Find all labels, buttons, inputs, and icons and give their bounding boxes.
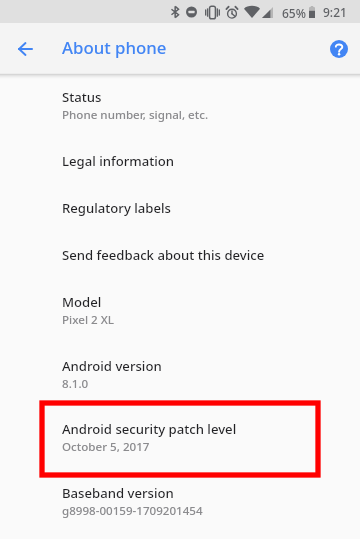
staticText: g8998-00159-1709201454 [62, 503, 203, 519]
staticText: Status [62, 88, 102, 106]
button[interactable]: Android security patch level [0, 408, 360, 464]
button[interactable]: Legal information [0, 140, 360, 182]
staticText: Baseband version [62, 484, 174, 502]
staticText: 9:21 [323, 4, 347, 20]
staticText: About phone [62, 36, 167, 59]
staticText: Model [62, 293, 102, 311]
staticText: Regulatory labels [62, 199, 171, 217]
button[interactable]: Back [12, 36, 38, 62]
button[interactable]: Help [319, 29, 359, 69]
button[interactable]: Send feedback about this device [0, 234, 360, 276]
staticText: Phone number, signal, etc. [62, 107, 209, 123]
staticText: 8.1.0 [62, 376, 89, 392]
staticText: Android version [62, 357, 162, 375]
staticText: Send feedback about this device [62, 246, 265, 264]
staticText: Legal information [62, 152, 175, 170]
staticText: October 5, 2017 [62, 439, 150, 455]
button[interactable]: Regulatory labels [0, 187, 360, 229]
staticText: Android security patch level [62, 420, 237, 438]
button[interactable]: Model [0, 281, 360, 337]
button[interactable]: Baseband version [0, 472, 360, 528]
staticText: 65% [282, 5, 306, 21]
button[interactable]: Status [0, 76, 360, 132]
button[interactable]: Android version [0, 345, 360, 401]
staticText: Pixel 2 XL [62, 312, 114, 328]
